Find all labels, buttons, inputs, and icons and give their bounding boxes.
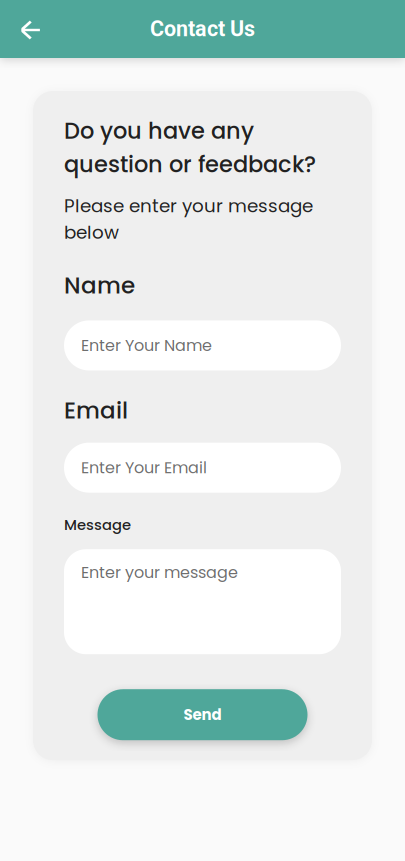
staticText: Enter Your Name	[81, 334, 212, 357]
staticText: Do you have any	[64, 115, 254, 146]
staticText: question or feedback?	[64, 148, 316, 180]
staticText: Send	[183, 704, 221, 725]
staticText: Name	[64, 269, 135, 301]
staticText: Enter your message	[81, 561, 238, 584]
staticText: Message	[64, 515, 131, 535]
button[interactable]: Send	[97, 689, 307, 740]
staticText: Contact Us	[150, 16, 255, 42]
staticText: below	[64, 220, 119, 245]
button[interactable]: Back	[10, 9, 50, 49]
staticText: Enter Your Email	[81, 456, 207, 479]
staticText: Please enter your message	[64, 193, 313, 219]
staticText: Email	[64, 394, 128, 427]
